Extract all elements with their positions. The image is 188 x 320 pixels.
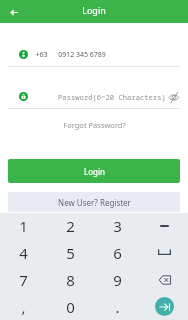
staticText: 1 [19,216,28,236]
staticText: 3 [113,216,122,236]
staticText: . [115,297,120,317]
staticText: 8 [66,270,75,290]
button[interactable]: 1 [0,213,47,239]
button[interactable]: 3 [94,213,141,239]
button[interactable]: 9 [94,266,141,293]
staticText: +63 [35,50,48,60]
button[interactable]: Space [141,239,188,266]
button[interactable]: Backspace [141,266,188,293]
button[interactable]: Forgot Password? [59,116,130,134]
button[interactable]: Enter [141,293,188,320]
button[interactable]: New User? Register [8,192,180,212]
button[interactable]: . [94,293,141,320]
staticText: 2 [66,216,75,236]
staticText: 0912 345 6789 [58,50,106,60]
button[interactable]: Login [8,159,180,183]
button[interactable]: 2 [47,213,94,239]
staticText: Login [84,166,105,177]
staticText: Password(6~20 Characters) [58,92,166,102]
button[interactable]: , [0,293,47,320]
staticText: New User? Register [58,197,131,208]
staticText: 7 [19,270,28,290]
button[interactable]: Show password [168,90,180,104]
staticText: 0 [66,297,75,317]
staticText: 6 [113,243,122,263]
button[interactable]: 5 [47,239,94,266]
button[interactable]: 4 [0,239,47,266]
button[interactable]: 8 [47,266,94,293]
button[interactable]: Dash [141,213,188,239]
staticText: 5 [66,243,75,263]
staticText: 4 [19,243,28,263]
button[interactable]: 0 [47,293,94,320]
button[interactable]: 7 [0,266,47,293]
staticText: , [21,297,26,317]
staticText: Login [82,4,106,16]
staticText: Forgot Password? [63,120,126,130]
button[interactable]: Back [5,3,23,21]
button[interactable]: 6 [94,239,141,266]
staticText: 9 [113,270,122,290]
